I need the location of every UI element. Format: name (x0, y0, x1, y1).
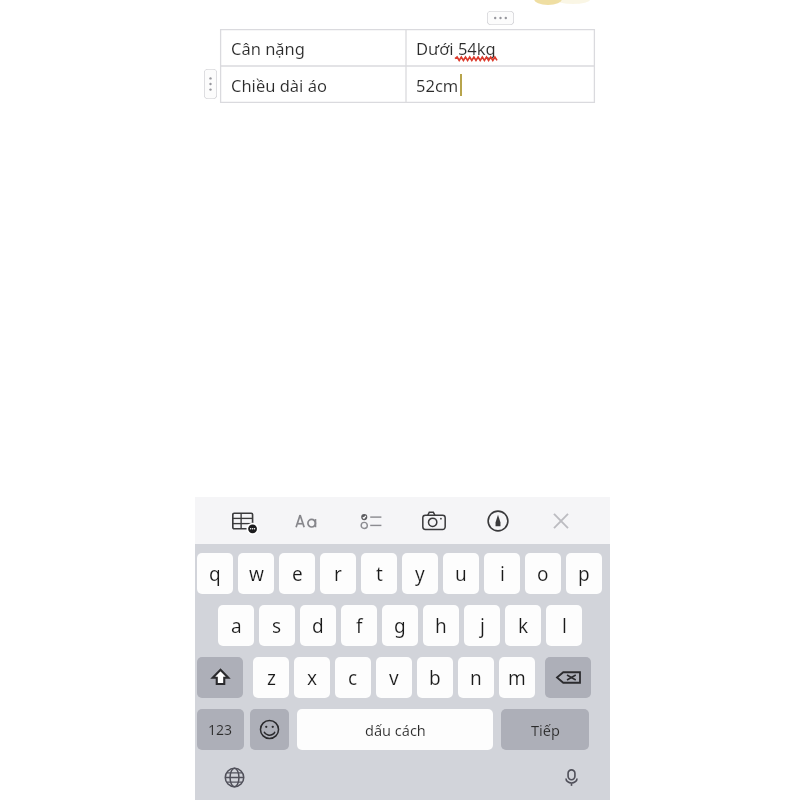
button[interactable]: Tiếp (501, 709, 589, 750)
button[interactable]: j (464, 605, 500, 646)
button[interactable]: dấu cách (297, 709, 493, 750)
staticText: l (562, 613, 567, 639)
button[interactable]: x (294, 657, 330, 698)
staticText: r (334, 561, 342, 587)
button[interactable]: n (458, 657, 494, 698)
button[interactable]: a (218, 605, 254, 646)
staticText: m (508, 665, 526, 691)
button[interactable]: Column handle (487, 11, 514, 25)
button[interactable]: z (253, 657, 289, 698)
button[interactable]: b (417, 657, 453, 698)
staticText: v (389, 665, 399, 691)
button[interactable]: p (566, 553, 602, 594)
button[interactable]: Insert table (227, 504, 261, 538)
staticText: Cân nặng (231, 37, 305, 59)
staticText: t (376, 561, 383, 587)
button[interactable]: Checklist (354, 504, 388, 538)
staticText: Dưới 54kg (416, 37, 496, 59)
button[interactable]: Cân nặng (220, 29, 595, 66)
button[interactable]: Change keyboard (221, 764, 247, 790)
staticText: f (356, 613, 363, 639)
staticText: dấu cách (365, 720, 426, 740)
button[interactable]: Chiều dài áo (220, 66, 595, 103)
button[interactable]: y (402, 553, 438, 594)
staticText: d (312, 613, 324, 639)
staticText: y (415, 561, 425, 587)
button[interactable]: e (279, 553, 315, 594)
button[interactable]: d (300, 605, 336, 646)
staticText: s (272, 613, 282, 639)
button[interactable]: w (238, 553, 274, 594)
button[interactable]: m (499, 657, 535, 698)
button[interactable]: s (259, 605, 295, 646)
staticText: q (209, 561, 221, 587)
staticText: w (249, 561, 264, 587)
staticText: g (394, 613, 406, 639)
staticText: u (455, 561, 467, 587)
button[interactable]: r (320, 553, 356, 594)
staticText: Chiều dài áo (231, 74, 327, 96)
staticText: h (435, 613, 447, 639)
staticText: p (578, 561, 590, 587)
staticText: 123 (208, 720, 233, 739)
button[interactable]: Markup (481, 504, 515, 538)
staticText: i (500, 561, 505, 587)
button[interactable]: o (525, 553, 561, 594)
staticText: e (292, 561, 303, 587)
button[interactable]: f (341, 605, 377, 646)
button[interactable]: q (197, 553, 233, 594)
button[interactable]: 123 (197, 709, 244, 750)
staticText: 52cm (416, 74, 459, 96)
button[interactable]: v (376, 657, 412, 698)
button[interactable]: Shift (197, 657, 243, 698)
button[interactable]: k (505, 605, 541, 646)
button[interactable]: c (335, 657, 371, 698)
staticText: Tiếp (531, 720, 560, 740)
staticText: n (470, 665, 482, 691)
staticText: j (480, 613, 485, 639)
button[interactable]: t (361, 553, 397, 594)
button[interactable]: g (382, 605, 418, 646)
button[interactable]: Text format (290, 504, 324, 538)
button[interactable]: h (423, 605, 459, 646)
staticText: b (429, 665, 441, 691)
staticText: o (537, 561, 549, 587)
staticText: k (518, 613, 529, 639)
staticText: x (307, 665, 318, 691)
staticText: c (348, 665, 358, 691)
staticText: a (231, 613, 242, 639)
button[interactable]: Camera (417, 504, 451, 538)
button[interactable]: Backspace (545, 657, 591, 698)
button[interactable]: Close keyboard (544, 504, 578, 538)
staticText: z (267, 665, 276, 691)
button[interactable]: l (546, 605, 582, 646)
button[interactable]: Emoji (250, 709, 289, 750)
button[interactable]: i (484, 553, 520, 594)
button[interactable]: Dictate (558, 764, 584, 790)
button[interactable]: Row handle (204, 69, 217, 99)
button[interactable]: u (443, 553, 479, 594)
